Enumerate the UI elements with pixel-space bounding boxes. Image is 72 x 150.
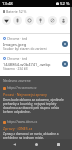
staticText: Chrome · ted (7, 56, 28, 60)
button[interactable]: https://www.idnes.cz (0, 120, 70, 140)
button[interactable]: Quick setting 4 (36, 16, 45, 25)
button[interactable]: Quick setting 1 (2, 16, 11, 25)
button[interactable]: Quick setting 3 (25, 16, 34, 25)
button[interactable]: Open download (62, 41, 68, 47)
button[interactable]: Home (28, 139, 44, 150)
staticText: https://www.idnes.cz (7, 120, 38, 124)
button[interactable]: Open download (62, 61, 68, 67)
staticText: Soubor byl stazen do zarizeni (3, 47, 47, 51)
staticText: Nedavno zavrene (3, 78, 31, 83)
button[interactable]: Chrome · ted (0, 54, 70, 73)
button[interactable]: Quick setting 6 (59, 16, 68, 25)
staticText: Zpravy z domova i ze sveta, aktualne a p… (3, 132, 67, 140)
staticText: 13:48 (2, 1, 13, 7)
staticText: Baterie 52 % (6, 9, 27, 14)
staticText: https://m.seznam.cz (7, 86, 37, 90)
staticText: Chrome · ted (7, 36, 28, 40)
button[interactable]: Chrome · ted (0, 34, 70, 53)
staticText: 52 % (60, 1, 70, 7)
staticText: Zpravy · iDNES.cz (3, 126, 33, 131)
button[interactable]: Back (6, 139, 22, 150)
staticText: Stazeno · 234 kB (3, 67, 28, 71)
button[interactable]: https://m.seznam.cz (0, 86, 70, 114)
staticText: 1448864-w0b4741_.webp (3, 62, 51, 67)
button[interactable]: Quick setting 2 (13, 16, 22, 25)
staticText: Pocasi · Nejnovejsi zpravy (3, 92, 47, 97)
button[interactable]: Quick setting 5 (48, 16, 57, 25)
staticText: Dnes bude oblacno az zatazeno, ojedinele… (3, 98, 67, 114)
button[interactable]: Recent apps (50, 139, 66, 150)
staticText: Images.jpeg (3, 42, 27, 47)
